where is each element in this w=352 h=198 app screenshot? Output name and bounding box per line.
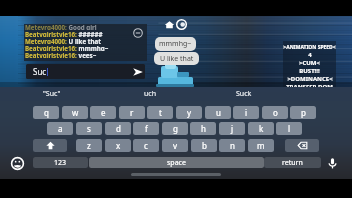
button[interactable]: 4	[283, 51, 336, 59]
button[interactable]: >CUM<	[283, 59, 336, 67]
button[interactable]: uch	[124, 88, 176, 100]
button[interactable]: a	[47, 122, 73, 135]
staticText: Meteyrg4000:	[25, 23, 67, 30]
button[interactable]: s	[76, 122, 102, 135]
button[interactable]: m	[248, 139, 274, 152]
button[interactable]: b	[191, 139, 217, 152]
button[interactable]: Send	[133, 68, 143, 76]
staticText: v	[173, 140, 178, 151]
staticText: u	[216, 107, 221, 118]
staticText: j	[231, 123, 234, 134]
staticText: Beatygirlstyle16:	[25, 30, 77, 37]
button[interactable]: r	[119, 106, 145, 119]
button[interactable]: >DOMINANCE<	[283, 75, 336, 83]
button[interactable]: c	[133, 139, 159, 152]
button[interactable]: 123	[33, 157, 88, 168]
staticText: uch	[144, 89, 157, 99]
staticText: Beatygirlstyle16:	[25, 44, 77, 51]
button[interactable]: d	[105, 122, 131, 135]
button[interactable]: p	[290, 106, 316, 119]
staticText: o	[273, 107, 278, 118]
staticText: t	[159, 107, 162, 118]
staticText: mmmhg~	[77, 44, 109, 51]
staticText: TRANSFER DOM	[286, 83, 333, 91]
staticText: l	[288, 123, 291, 134]
staticText: e	[101, 107, 106, 118]
staticText: Suc	[33, 66, 47, 77]
button[interactable]: Suc	[26, 64, 145, 79]
button[interactable]: o	[262, 106, 288, 119]
staticText: a	[58, 123, 63, 134]
staticText: q	[44, 107, 49, 118]
staticText: h	[201, 123, 206, 134]
button[interactable]: i	[233, 106, 259, 119]
staticText: 123	[54, 158, 67, 168]
staticText: >ANIMATION SPEED<	[283, 44, 336, 51]
button[interactable]: e	[90, 106, 116, 119]
staticText: g	[173, 123, 178, 134]
staticText: U like that	[67, 37, 101, 44]
button[interactable]: Emoji keyboard	[11, 157, 24, 170]
staticText: Suck	[236, 89, 252, 99]
staticText: >DOMINANCE<	[287, 75, 333, 83]
staticText: d	[116, 123, 121, 134]
staticText: f	[145, 123, 148, 134]
button[interactable]: Home	[164, 19, 175, 30]
staticText: BUST!!!	[299, 67, 320, 75]
button[interactable]: Backspace	[285, 139, 319, 152]
button[interactable]: x	[105, 139, 131, 152]
button[interactable]: u	[205, 106, 231, 119]
staticText: Meteyrg4000:	[25, 37, 67, 44]
staticText: r	[130, 107, 134, 118]
staticText: "Suc"	[43, 89, 61, 99]
staticText: n	[230, 140, 235, 151]
staticText: Good girl	[67, 23, 97, 30]
button[interactable]: Meteyrg4000:	[24, 24, 147, 61]
staticText: p	[301, 107, 306, 118]
button[interactable]: l	[276, 122, 302, 135]
staticText: y	[187, 107, 192, 118]
button[interactable]: v	[162, 139, 188, 152]
button[interactable]: q	[33, 106, 59, 119]
button[interactable]: Suck	[218, 88, 270, 100]
staticText: ######	[77, 30, 103, 37]
button[interactable]: space	[89, 157, 264, 168]
button[interactable]: z	[76, 139, 102, 152]
staticText: >CUM<	[299, 59, 320, 67]
button[interactable]: >ANIMATION SPEED<	[283, 43, 336, 51]
staticText: k	[259, 123, 264, 134]
staticText: c	[144, 140, 148, 151]
staticText: yees~	[77, 51, 97, 58]
button[interactable]: Camera view	[176, 19, 187, 30]
staticText: 4	[308, 51, 312, 59]
staticText: b	[202, 140, 207, 151]
staticText: i	[245, 107, 248, 118]
staticText: Beatygirlstyle16:	[25, 51, 77, 58]
button[interactable]: Dictation	[326, 157, 339, 170]
button[interactable]: n	[219, 139, 245, 152]
staticText: return	[282, 158, 303, 168]
staticText: s	[87, 123, 91, 134]
button[interactable]: Shift	[33, 139, 67, 152]
staticText: mmmhg~	[159, 39, 192, 49]
button[interactable]: w	[62, 106, 88, 119]
button[interactable]: TRANSFER DOM	[283, 83, 336, 91]
staticText: x	[116, 140, 121, 151]
button[interactable]: "Suc"	[26, 88, 78, 100]
staticText: w	[72, 107, 79, 118]
button[interactable]: return	[264, 157, 321, 168]
button[interactable]: j	[219, 122, 245, 135]
button[interactable]: y	[176, 106, 202, 119]
button[interactable]: t	[147, 106, 173, 119]
staticText: U like that	[160, 54, 194, 64]
button[interactable]: h	[190, 122, 216, 135]
button[interactable]: f	[133, 122, 159, 135]
button[interactable]: k	[248, 122, 274, 135]
staticText: z	[87, 140, 91, 151]
button[interactable]: g	[162, 122, 188, 135]
staticText: m	[257, 140, 265, 151]
staticText: space	[167, 158, 186, 168]
button[interactable]: BUST!!!	[283, 67, 336, 75]
button[interactable]: Collapse chat	[133, 28, 143, 38]
